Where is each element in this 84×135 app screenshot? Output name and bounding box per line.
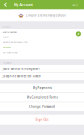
staticText: My Payments [32, 86, 51, 90]
staticText: Change Password [29, 105, 55, 109]
staticText: parent@parentsquare.com [3, 41, 28, 43]
button[interactable]: Jacob Sanchez (Kindergarten) [0, 65, 84, 72]
staticText: My Children [3, 62, 12, 64]
staticText: EDIT [72, 3, 77, 6]
staticText: My Info [3, 26, 10, 28]
button[interactable]: Edit my info [76, 31, 81, 36]
staticText: Sign Out [35, 118, 48, 122]
staticText: Jacob Sanchez (Kindergarten) [3, 67, 40, 70]
staticText: PARENT [3, 36, 9, 38]
button[interactable]: My Payments [0, 83, 84, 92]
button[interactable]: Sign Out [0, 115, 84, 125]
button[interactable]: Josephine Sanchez (5th Grade) [0, 73, 84, 80]
staticText: Maria Sanchez [3, 30, 17, 33]
staticText: Cell Phone [3, 46, 11, 49]
button[interactable]: My Completed Forms [0, 93, 84, 102]
staticText: 301 Main Street [3, 51, 18, 54]
staticText: Lincoln Elementary School [26, 13, 66, 17]
staticText: My Completed Forms [26, 95, 57, 99]
button[interactable]: Back [0, 0, 11, 9]
staticText: My Account [14, 2, 33, 7]
button[interactable]: EDIT [69, 0, 80, 9]
button[interactable]: Change Password [0, 102, 84, 111]
staticText: Josephine Sanchez (5th Grade) [3, 75, 41, 78]
